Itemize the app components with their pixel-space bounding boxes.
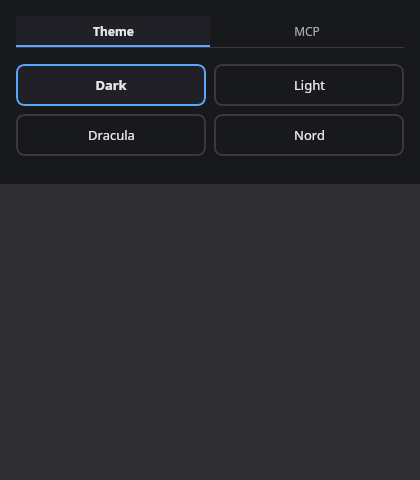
button[interactable]: MCP (210, 16, 404, 47)
staticText: Nord (294, 126, 325, 144)
staticText: Theme (93, 23, 134, 39)
button[interactable]: Nord (214, 114, 404, 156)
staticText: Light (294, 76, 325, 94)
button[interactable]: Dracula (16, 114, 206, 156)
button[interactable]: Light (214, 64, 404, 106)
button[interactable]: Dark (16, 64, 206, 106)
button[interactable]: Theme (16, 16, 210, 47)
staticText: Dark (95, 76, 127, 94)
staticText: Dracula (88, 126, 135, 144)
staticText: MCP (294, 23, 320, 39)
